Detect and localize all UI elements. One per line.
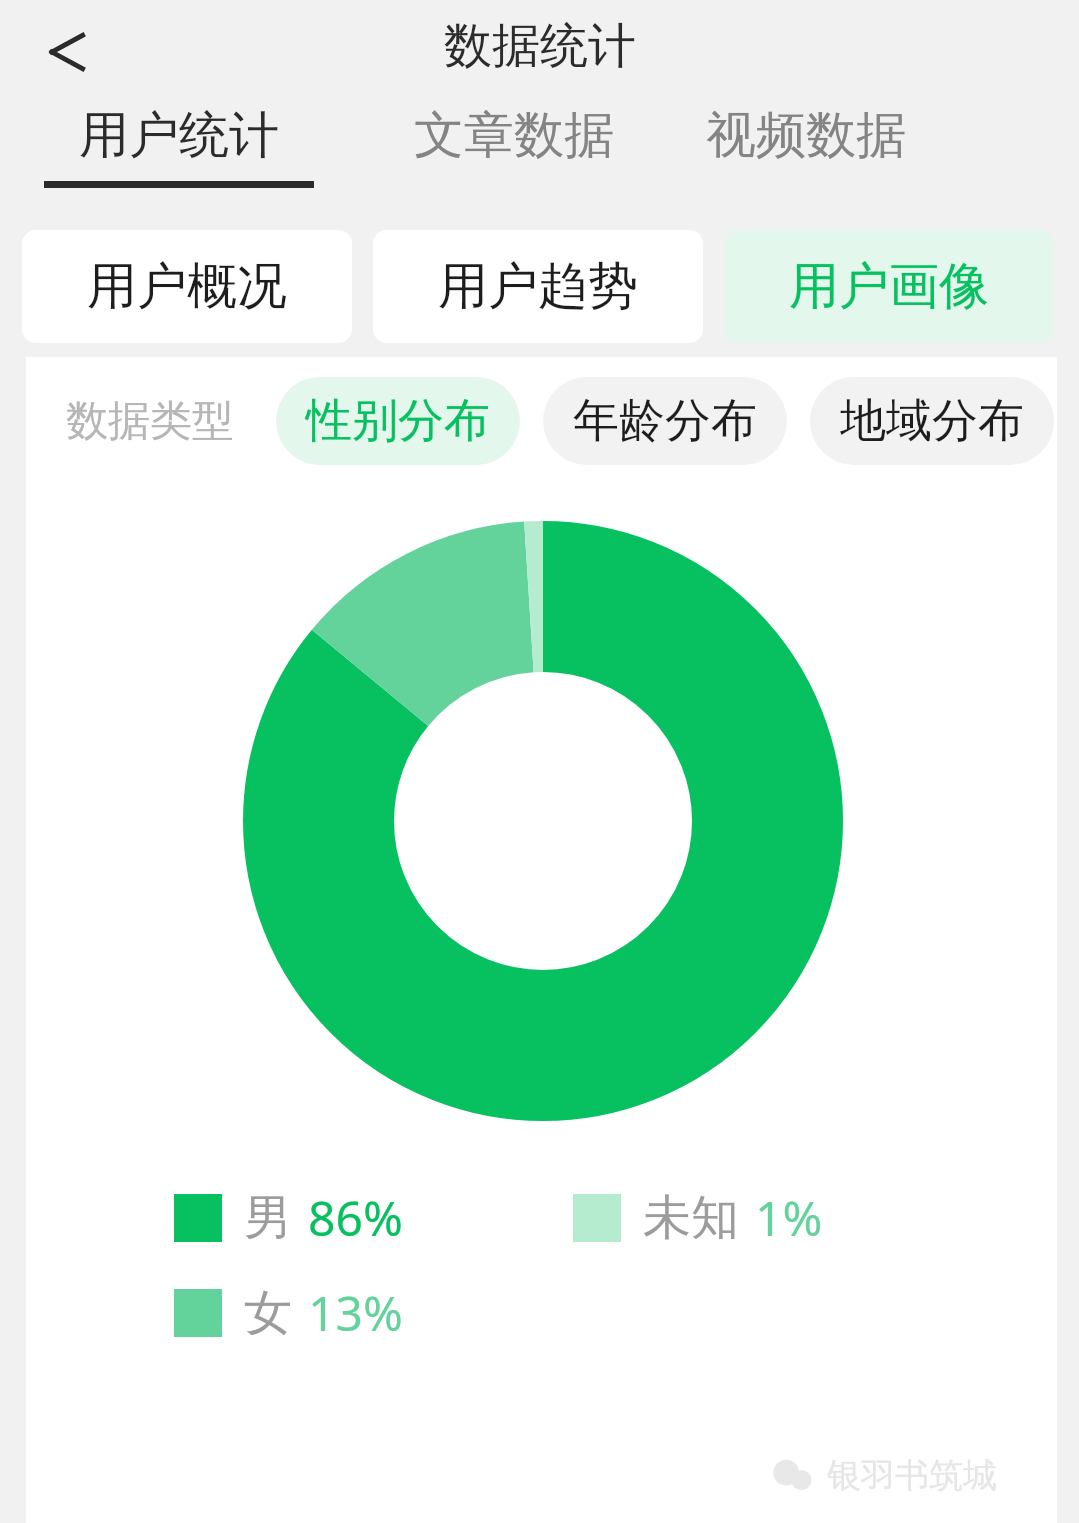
staticText: 未知 bbox=[643, 1188, 739, 1248]
button[interactable]: 性别分布 bbox=[276, 377, 520, 465]
staticText: 银羽书筑城 bbox=[827, 1454, 997, 1497]
staticText: 用户趋势 bbox=[438, 255, 638, 318]
button[interactable]: 用户趋势 bbox=[373, 230, 703, 343]
staticText: 女 bbox=[244, 1283, 292, 1343]
staticText: 地域分布 bbox=[840, 392, 1024, 450]
staticText: 文章数据 bbox=[414, 104, 614, 167]
staticText: 用户概况 bbox=[87, 255, 287, 318]
button[interactable]: 女 bbox=[174, 1280, 403, 1345]
button[interactable]: 用户概况 bbox=[22, 230, 352, 343]
button[interactable]: 年龄分布 bbox=[543, 377, 787, 465]
staticText: 视频数据 bbox=[706, 104, 906, 167]
staticText: 用户画像 bbox=[789, 255, 989, 318]
staticText: 用户统计 bbox=[79, 104, 279, 167]
button[interactable]: 用户画像 bbox=[724, 230, 1054, 343]
staticText: 男 bbox=[244, 1188, 292, 1248]
button[interactable]: 未知 bbox=[573, 1185, 823, 1250]
staticText: 性别分布 bbox=[306, 392, 490, 450]
button[interactable]: 数据类型 bbox=[66, 395, 234, 448]
button[interactable]: 男 bbox=[174, 1185, 403, 1250]
staticText: 年龄分布 bbox=[573, 392, 757, 450]
button[interactable]: 用户统计 bbox=[44, 104, 314, 188]
button[interactable]: 地域分布 bbox=[810, 377, 1054, 465]
staticText: 1% bbox=[755, 1185, 823, 1250]
button[interactable]: 视频数据 bbox=[706, 104, 906, 181]
button[interactable]: Back bbox=[34, 20, 98, 84]
staticText: 数据统计 bbox=[444, 16, 636, 76]
button[interactable]: 文章数据 bbox=[414, 104, 614, 181]
staticText: 13% bbox=[308, 1280, 403, 1345]
staticText: 86% bbox=[308, 1185, 403, 1250]
